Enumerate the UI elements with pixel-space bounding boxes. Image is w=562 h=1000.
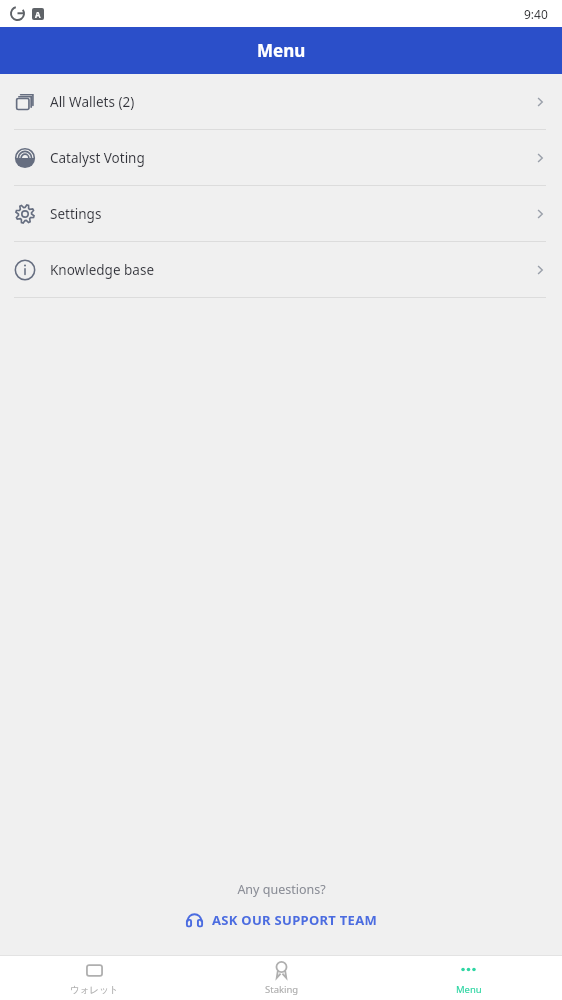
button[interactable]: Wallet bbox=[0, 955, 188, 1000]
button[interactable]: Menu bbox=[375, 955, 562, 1000]
button[interactable]: ASK OUR SUPPORT TEAM bbox=[177, 907, 386, 932]
button[interactable]: Settings bbox=[0, 186, 562, 241]
button[interactable]: Knowledge base bbox=[0, 242, 562, 297]
staticText: All Wallets (2) bbox=[50, 93, 532, 111]
staticText: Any questions? bbox=[237, 881, 326, 898]
staticText: 9:40 bbox=[524, 6, 548, 22]
staticText: ウォレット bbox=[70, 984, 119, 996]
staticText: Staking bbox=[265, 983, 299, 996]
staticText: Settings bbox=[50, 205, 532, 223]
staticText: Catalyst Voting bbox=[50, 149, 532, 167]
button[interactable]: All Wallets (2) bbox=[0, 74, 562, 129]
staticText: Menu bbox=[456, 983, 482, 996]
staticText: Knowledge base bbox=[50, 261, 532, 279]
staticText: Menu bbox=[257, 39, 306, 62]
staticText: ASK OUR SUPPORT TEAM bbox=[212, 911, 378, 929]
button[interactable]: Catalyst Voting bbox=[0, 130, 562, 185]
staticText: A bbox=[35, 9, 41, 20]
button[interactable]: Staking bbox=[188, 955, 375, 1000]
